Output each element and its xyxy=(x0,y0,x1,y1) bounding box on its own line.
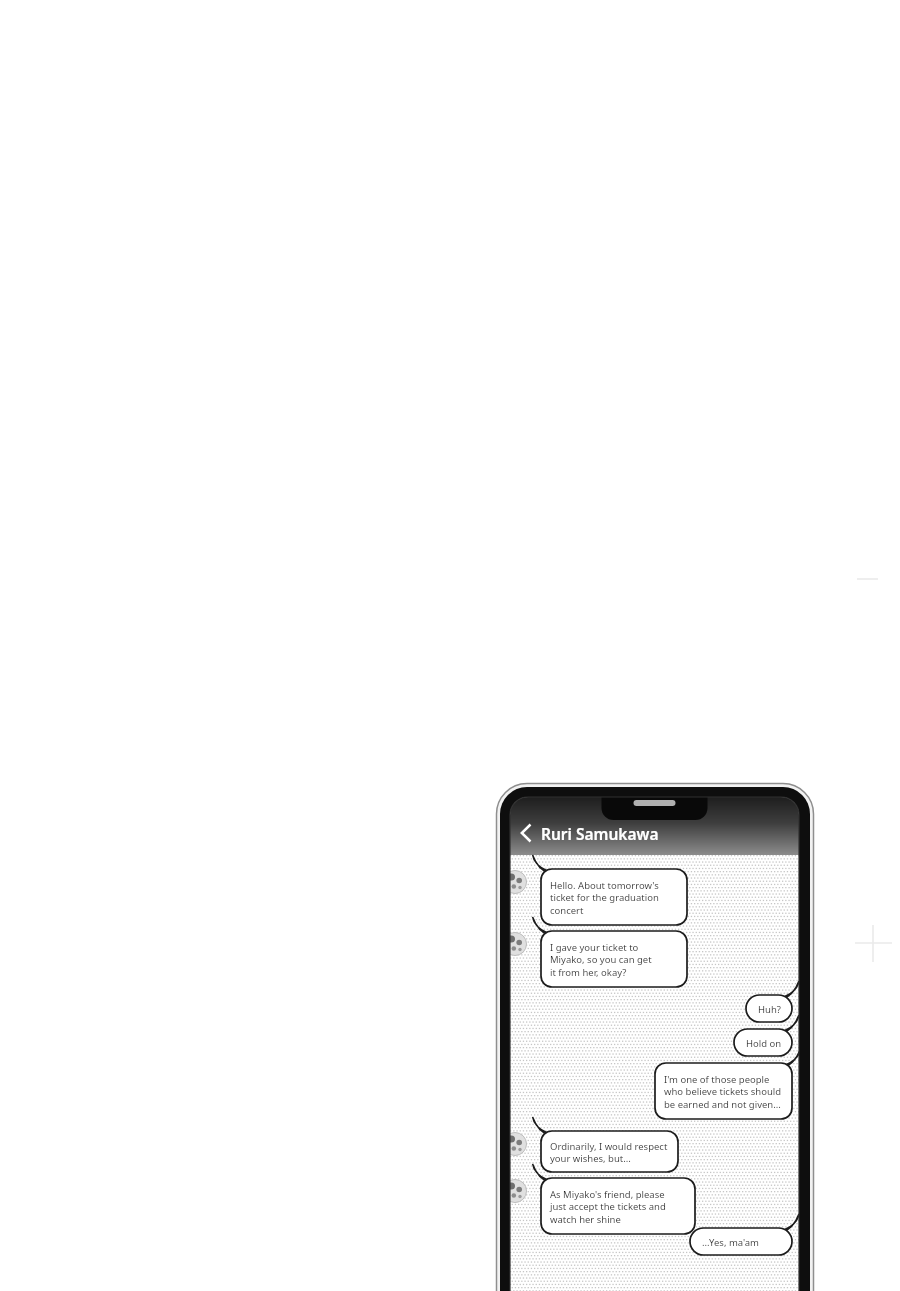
button[interactable] xyxy=(541,869,687,925)
button[interactable]: Back xyxy=(512,817,540,850)
button[interactable] xyxy=(541,1178,695,1234)
button[interactable] xyxy=(541,815,721,851)
button[interactable] xyxy=(541,931,687,987)
button[interactable] xyxy=(734,1029,792,1056)
button[interactable] xyxy=(746,995,792,1022)
button[interactable] xyxy=(541,1131,678,1172)
button[interactable] xyxy=(690,1228,792,1255)
button[interactable] xyxy=(655,1063,792,1119)
